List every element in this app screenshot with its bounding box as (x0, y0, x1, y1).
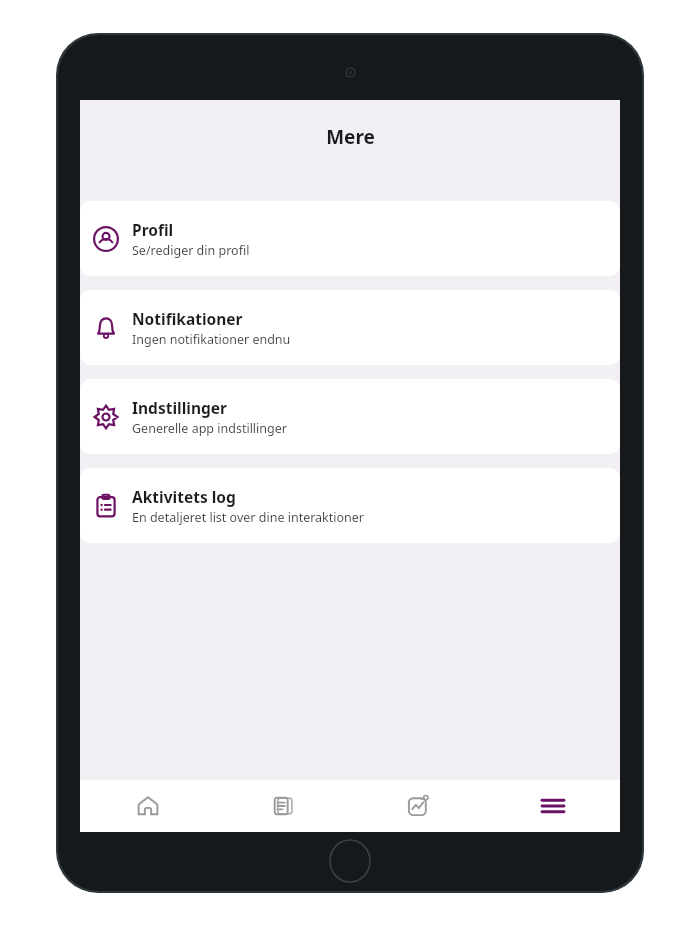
staticText: Aktivitets log (132, 486, 236, 507)
button[interactable]: More (485, 780, 620, 832)
staticText: Indstillinger (132, 397, 227, 418)
staticText: Notifikationer (132, 308, 243, 329)
staticText: Se/rediger din profil (132, 242, 250, 259)
button[interactable]: Insights (350, 780, 485, 832)
staticText: Generelle app indstillinger (132, 420, 287, 437)
button[interactable]: Notifikationer (80, 290, 620, 365)
staticText: En detaljeret list over dine interaktion… (132, 509, 365, 526)
staticText: Ingen notifikationer endnu (132, 331, 291, 348)
button[interactable]: Indstillinger (80, 379, 620, 454)
staticText: Mere (326, 124, 375, 150)
button[interactable]: Aktivitets log (80, 468, 620, 543)
button[interactable]: Documents (215, 780, 350, 832)
staticText: Profil (132, 219, 174, 240)
button[interactable]: Profil (80, 201, 620, 276)
button[interactable]: Home (80, 780, 215, 832)
